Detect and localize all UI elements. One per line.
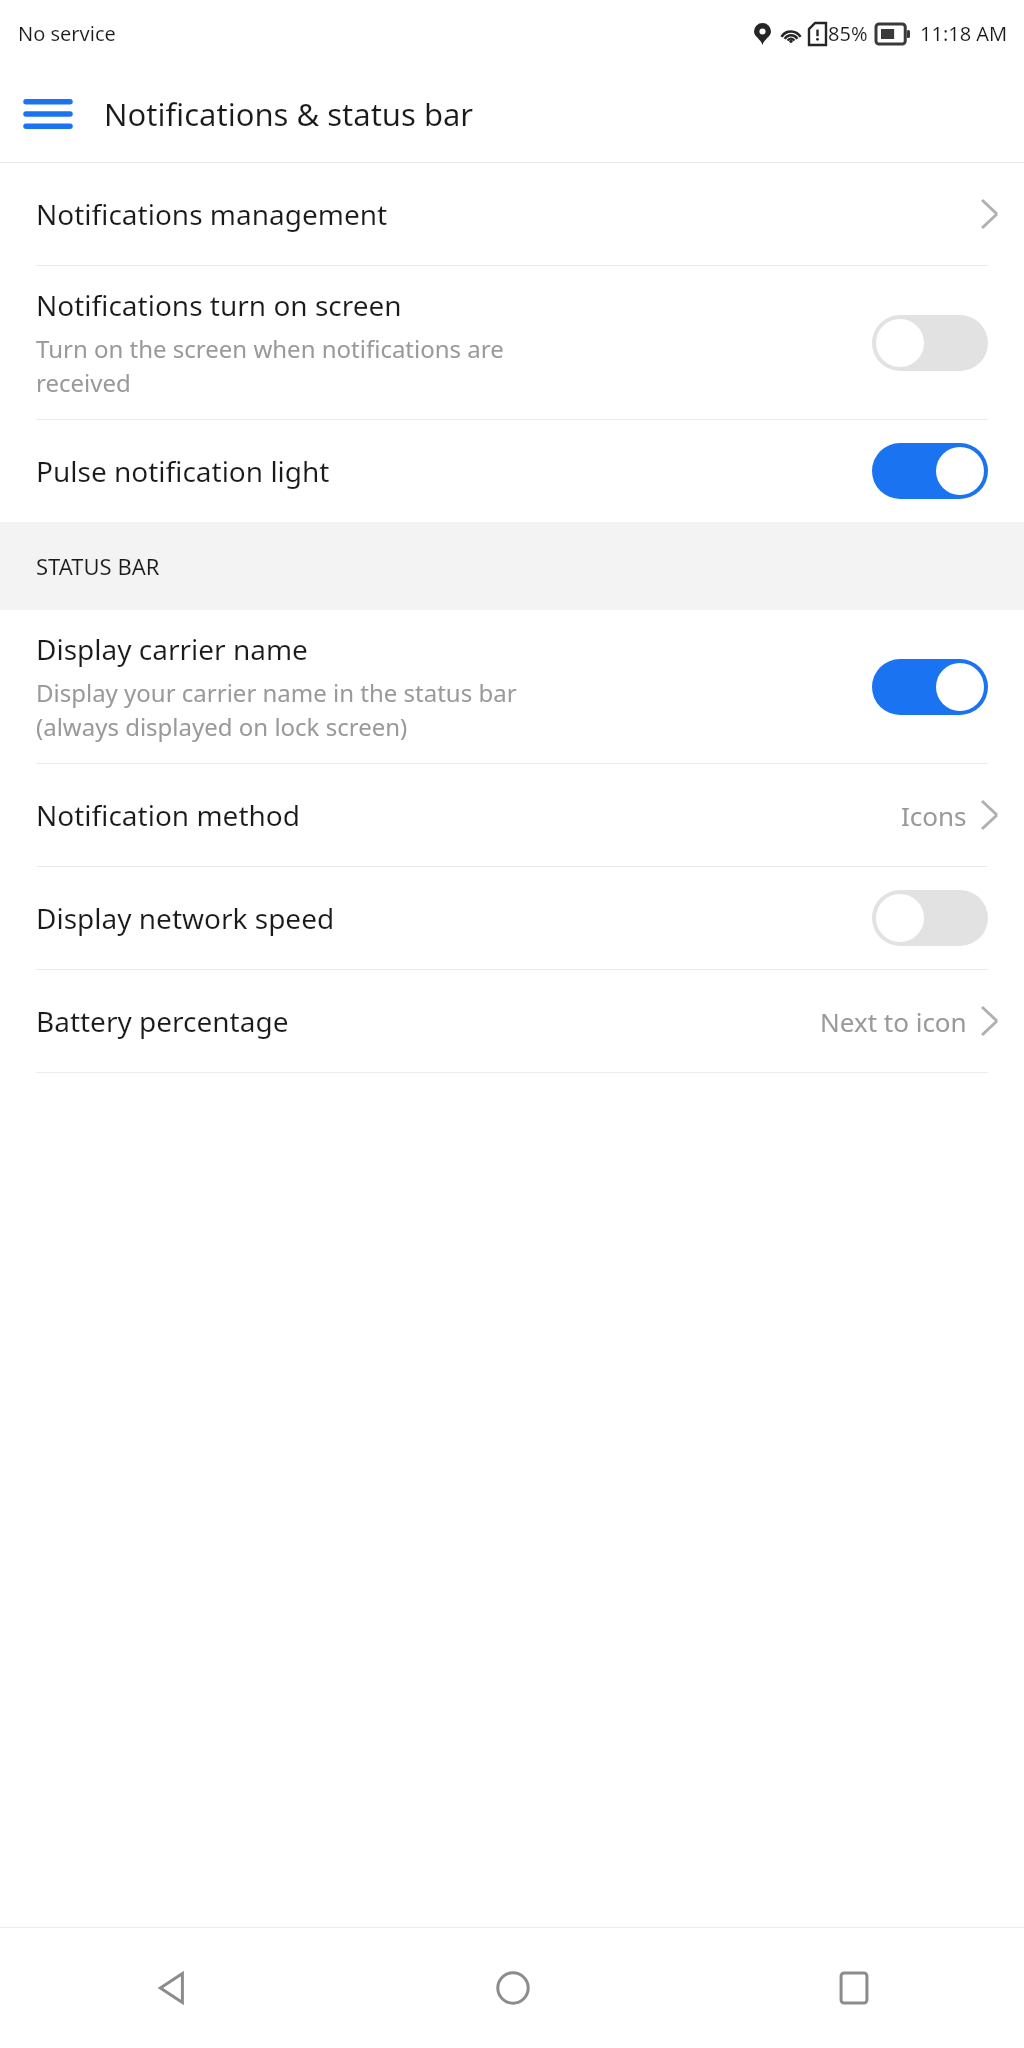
button[interactable]: Notifications turn on screen <box>0 266 1024 419</box>
button[interactable]: Display carrier name <box>0 610 1024 763</box>
staticText: Notifications turn on screen <box>36 286 402 324</box>
button[interactable]: Menu <box>16 82 80 146</box>
button[interactable]: Notification method <box>0 764 1024 866</box>
staticText: Notification method <box>36 796 901 834</box>
staticText: Turn on the screen when notifications ar… <box>36 332 504 399</box>
staticText: Icons <box>901 798 967 833</box>
button[interactable]: Back <box>0 1928 342 2048</box>
button[interactable]: Recents <box>683 1928 1024 2048</box>
button[interactable]: Display network speed <box>0 867 1024 969</box>
staticText: 11:18 AM <box>920 20 1008 47</box>
staticText: Next to icon <box>820 1004 967 1039</box>
staticText: Notifications management <box>36 195 981 233</box>
staticText: Display carrier name <box>36 630 308 668</box>
button[interactable]: Battery percentage <box>0 970 1024 1072</box>
button[interactable]: Notifications management <box>0 163 1024 265</box>
staticText: No service <box>18 20 116 47</box>
staticText: Display network speed <box>36 899 335 937</box>
button[interactable]: Off <box>872 315 988 371</box>
staticText: Battery percentage <box>36 1002 820 1040</box>
staticText: Notifications & status bar <box>104 93 474 135</box>
button[interactable]: On <box>872 659 988 715</box>
button[interactable]: On <box>872 443 988 499</box>
staticText: Pulse notification light <box>36 452 330 490</box>
button[interactable]: Off <box>872 890 988 946</box>
button[interactable]: Home <box>342 1928 683 2048</box>
staticText: Display your carrier name in the status … <box>36 676 517 743</box>
staticText: 85% <box>828 20 868 47</box>
button[interactable]: Pulse notification light <box>0 420 1024 522</box>
staticText: STATUS BAR <box>36 551 160 581</box>
